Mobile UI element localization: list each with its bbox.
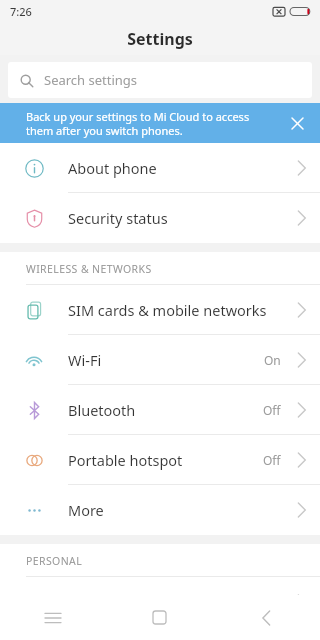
button[interactable]: Recents: [0, 595, 106, 640]
button[interactable]: Home: [106, 595, 213, 640]
button[interactable]: Security status: [0, 193, 320, 243]
staticText: Settings: [127, 28, 193, 50]
staticText: Off: [263, 452, 281, 468]
staticText: Back up your settings to Mi Cloud to acc…: [26, 109, 250, 138]
staticText: Display: [68, 592, 290, 612]
staticText: 7:26: [10, 4, 32, 19]
staticText: SIM cards & mobile networks: [68, 300, 290, 320]
staticText: Security status: [68, 208, 290, 228]
button[interactable]: Back up your settings to Mi Cloud to acc…: [0, 103, 320, 143]
staticText: More: [68, 500, 290, 520]
button[interactable]: SIM cards & mobile networks: [0, 285, 320, 335]
staticText: Bluetooth: [68, 400, 263, 420]
staticText: PERSONAL: [26, 554, 83, 568]
button[interactable]: Wi-Fi: [0, 335, 320, 385]
staticText: Portable hotspot: [68, 450, 263, 470]
button[interactable]: Back: [213, 595, 320, 640]
button[interactable]: Bluetooth: [0, 385, 320, 435]
staticText: Off: [263, 402, 281, 418]
staticText: Search settings: [44, 71, 138, 89]
button[interactable]: About phone: [0, 143, 320, 193]
staticText: WIRELESS & NETWORKS: [26, 262, 152, 276]
button[interactable]: More: [0, 485, 320, 535]
staticText: On: [264, 352, 281, 368]
staticText: About phone: [68, 158, 290, 178]
button[interactable]: Portable hotspot: [0, 435, 320, 485]
button[interactable]: Search settings: [8, 62, 312, 98]
button[interactable]: Display: [0, 577, 320, 627]
button[interactable]: Close banner: [284, 110, 310, 136]
staticText: Wi-Fi: [68, 350, 264, 370]
